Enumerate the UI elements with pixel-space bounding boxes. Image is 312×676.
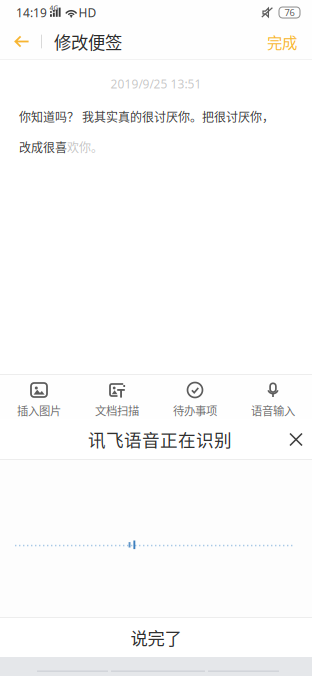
staticText: HD <box>78 4 96 20</box>
staticText: 14:19 <box>16 4 47 20</box>
button[interactable]: 文档扫描 <box>78 375 156 419</box>
staticText: 语音输入 <box>251 402 295 418</box>
staticText: 说完了 <box>130 625 181 650</box>
staticText: 讯飞语音正在识别 <box>88 426 232 452</box>
button[interactable]: 语音输入 <box>234 375 312 419</box>
button[interactable]: 返回 <box>0 25 41 58</box>
staticText: 你知道吗？ 我其实真的很讨厌你。把很讨厌你， <box>19 108 274 125</box>
staticText: 2019/9/25 13:51 <box>110 76 201 92</box>
button[interactable]: 完成 <box>251 21 312 62</box>
button[interactable]: 关闭 <box>275 420 312 457</box>
staticText: 改成很喜 <box>19 138 67 156</box>
button[interactable]: 插入图片 <box>0 375 78 419</box>
staticText: 文档扫描 <box>95 402 139 418</box>
button[interactable]: 说完了 <box>0 618 312 657</box>
staticText: 欢你。 <box>67 138 103 156</box>
staticText: 修改便签 <box>54 29 122 54</box>
staticText: 插入图片 <box>17 402 61 418</box>
staticText: 4G <box>49 4 58 12</box>
staticText: 待办事项 <box>173 402 217 418</box>
button[interactable]: 待办事项 <box>156 375 234 419</box>
staticText: 76 <box>284 6 294 19</box>
staticText: 完成 <box>267 30 297 53</box>
